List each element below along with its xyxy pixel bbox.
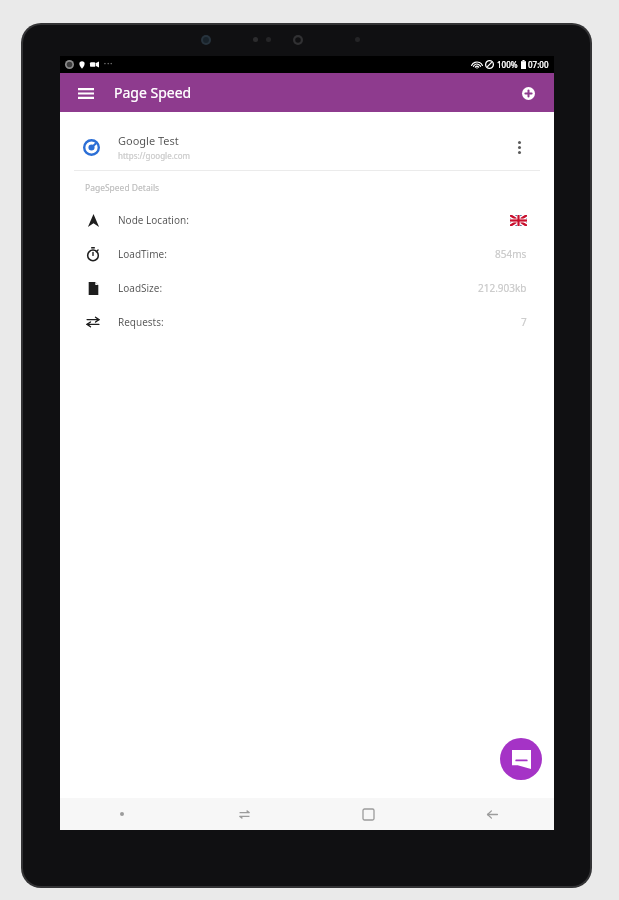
button[interactable]: Assistant	[60, 798, 183, 830]
button[interactable]: LoadSize:	[74, 271, 540, 305]
staticText: 100%	[497, 59, 518, 70]
button[interactable]: LoadTime:	[74, 237, 540, 271]
button[interactable]: Requests:	[74, 305, 540, 339]
staticText: 854ms	[495, 247, 527, 261]
button[interactable]: Open navigation menu	[72, 79, 100, 107]
staticText: LoadTime:	[118, 247, 167, 261]
staticText: Node Location:	[118, 213, 189, 227]
button[interactable]: Switch apps	[183, 798, 306, 830]
staticText: 212.903kb	[478, 281, 527, 295]
staticText: 07:00	[528, 59, 549, 70]
button[interactable]: Open support chat	[500, 738, 542, 780]
button[interactable]: Back	[430, 798, 554, 830]
button[interactable]: Google Test	[74, 124, 540, 170]
button[interactable]: Add new test	[514, 79, 542, 107]
staticText: https://google.com	[118, 150, 190, 161]
button[interactable]: Home	[306, 798, 430, 830]
staticText: • • •	[104, 61, 113, 68]
button[interactable]: Node Location:	[74, 203, 540, 237]
staticText: Requests:	[118, 315, 164, 329]
button[interactable]: More options	[506, 134, 532, 160]
staticText: 7	[521, 315, 527, 329]
staticText: PageSpeed Details	[85, 182, 160, 194]
staticText: Google Test	[118, 133, 179, 148]
staticText: LoadSize:	[118, 281, 163, 295]
staticText: Page Speed	[114, 83, 192, 102]
